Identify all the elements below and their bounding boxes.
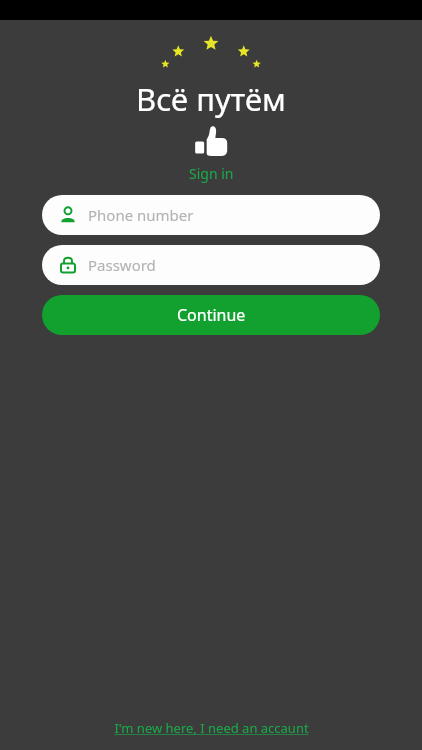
staticText: I'm new here, I need an accaunt (114, 719, 309, 737)
button[interactable]: Continue (42, 295, 380, 335)
button[interactable]: Password (42, 245, 380, 285)
button[interactable]: Sign in (189, 164, 234, 183)
staticText: Sign in (189, 164, 234, 183)
button[interactable]: I'm new here, I need an accaunt (114, 719, 309, 737)
staticText: Всё путём (136, 78, 286, 120)
staticText: Phone number (88, 205, 194, 225)
staticText: Password (88, 255, 156, 275)
button[interactable]: Phone number (42, 195, 380, 235)
staticText: Continue (177, 304, 246, 326)
